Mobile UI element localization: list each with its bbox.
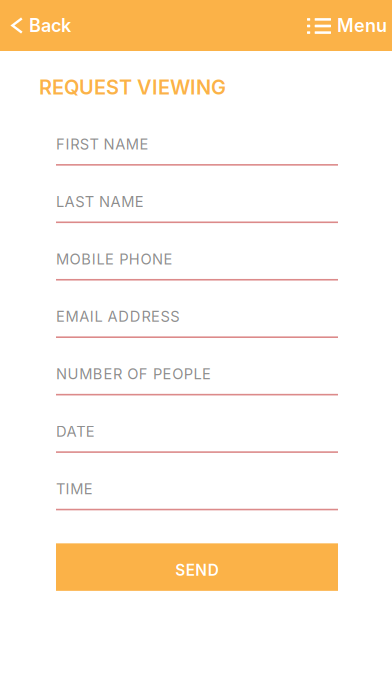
staticText: TIME [56,480,93,498]
button[interactable]: LAST NAME [56,166,338,223]
staticText: FIRST NAME [56,135,148,153]
button[interactable]: EMAIL ADDRESS [56,280,338,338]
button[interactable]: TIME [56,453,338,510]
staticText: Back [29,15,71,36]
button[interactable]: DATE [56,395,338,453]
staticText: SEND [175,561,219,579]
staticText: MOBILE PHONE [56,250,173,268]
button[interactable]: MOBILE PHONE [56,223,338,281]
button[interactable]: NUMBER OF PEOPLE [56,338,338,395]
staticText: Menu [337,15,387,36]
staticText: LAST NAME [56,193,144,210]
button[interactable]: Menu [294,0,392,51]
button[interactable]: Back [0,0,84,51]
staticText: REQUEST VIEWING [39,75,226,99]
button[interactable]: SEND [56,543,338,591]
staticText: EMAIL ADDRESS [56,308,179,325]
staticText: NUMBER OF PEOPLE [56,365,211,383]
button[interactable]: FIRST NAME [56,108,338,166]
staticText: DATE [56,423,95,440]
